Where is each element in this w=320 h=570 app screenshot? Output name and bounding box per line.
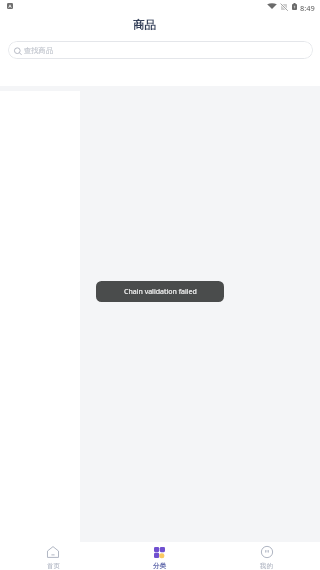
staticText: 首页 <box>47 562 60 570</box>
staticText: 8:49 <box>300 3 315 13</box>
staticText: Chain validation failed <box>124 287 197 297</box>
button[interactable]: Profile <box>213 542 320 570</box>
staticText: 商品 <box>133 18 156 32</box>
button[interactable]: 查找商品 <box>8 41 313 59</box>
staticText: 我的 <box>260 562 273 570</box>
button[interactable]: Home <box>0 542 106 570</box>
staticText: 分类 <box>153 562 166 570</box>
button[interactable]: Categories <box>106 542 213 570</box>
staticText: 查找商品 <box>24 46 54 55</box>
